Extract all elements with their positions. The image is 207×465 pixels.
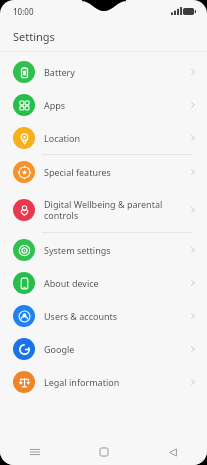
button[interactable]: Location (0, 121, 207, 154)
staticText: Settings (13, 29, 55, 44)
staticText: Special features (44, 166, 190, 178)
button[interactable]: System settings (0, 233, 207, 266)
button[interactable]: Users & accounts (0, 299, 207, 332)
button[interactable]: About device (0, 266, 207, 299)
staticText: Apps (44, 99, 190, 111)
button[interactable]: Digital Wellbeing & parental controls (0, 188, 207, 232)
staticText: Battery (44, 66, 190, 78)
staticText: 10:00 (13, 6, 34, 17)
button[interactable]: Back (138, 439, 207, 465)
button[interactable]: Google (0, 332, 207, 365)
button[interactable]: Battery (0, 55, 207, 88)
staticText: System settings (44, 244, 190, 256)
staticText: Users & accounts (44, 310, 190, 322)
staticText: About device (44, 277, 190, 289)
staticText: Location (44, 132, 190, 144)
staticText: Digital Wellbeing & parental controls (44, 198, 190, 222)
button[interactable]: Legal information (0, 365, 207, 398)
button[interactable]: Apps (0, 88, 207, 121)
button[interactable]: Home (69, 439, 138, 465)
staticText: Google (44, 343, 190, 355)
staticText: Legal information (44, 376, 190, 388)
button[interactable]: Recent apps (0, 439, 69, 465)
button[interactable]: Special features (0, 155, 207, 188)
